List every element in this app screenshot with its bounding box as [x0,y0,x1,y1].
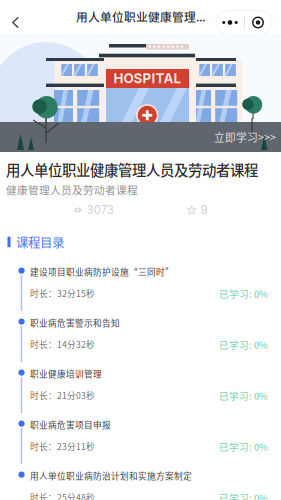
staticText: 已学习: 0% [219,388,268,402]
button[interactable]: Back [0,0,30,33]
staticText: 职业健康培训管理 [30,367,102,380]
staticText: 建设项目职业病防护设施“三同时” [30,265,174,278]
button[interactable]: 用人单位职业病防治计划和实施方案制定 [0,468,281,500]
staticText: 时长：23分11秒 [30,440,95,452]
button[interactable]: More [216,10,244,34]
button[interactable]: 职业病危害项目申报 [0,417,281,468]
staticText: 健康管理人员及劳动者课程 [6,182,138,197]
staticText: 9 [201,203,208,217]
staticText: 职业病危害项目申报 [30,418,111,431]
staticText: 职业病危害警示和告知 [30,316,120,329]
staticText: 已学习: 0% [219,286,268,300]
staticText: 用人单位职业健康管理... [76,8,205,25]
button[interactable]: Close [244,10,272,34]
staticText: 3073 [87,203,114,217]
button[interactable]: 建设项目职业病防护设施“三同时” [0,264,281,315]
staticText: 时长：25分48秒 [30,491,95,500]
staticText: 时长：21分03秒 [30,389,95,401]
button[interactable]: 职业健康培训管理 [0,366,281,417]
staticText: 时长：14分32秒 [30,338,95,350]
staticText: 用人单位职业健康管理人员及劳动者课程 [6,159,258,180]
staticText: HOSPITAL [113,70,181,86]
staticText: 课程目录 [16,233,64,251]
staticText: 用人单位职业病防治计划和实施方案制定 [30,469,192,482]
staticText: 时长：32分15秒 [30,287,95,299]
staticText: 已学习: 0% [219,490,268,500]
button[interactable]: 职业病危害警示和告知 [0,315,281,366]
staticText: 已学习: 0% [219,337,268,351]
staticText: 立即学习>>> [214,129,276,145]
staticText: 已学习: 0% [219,439,268,453]
